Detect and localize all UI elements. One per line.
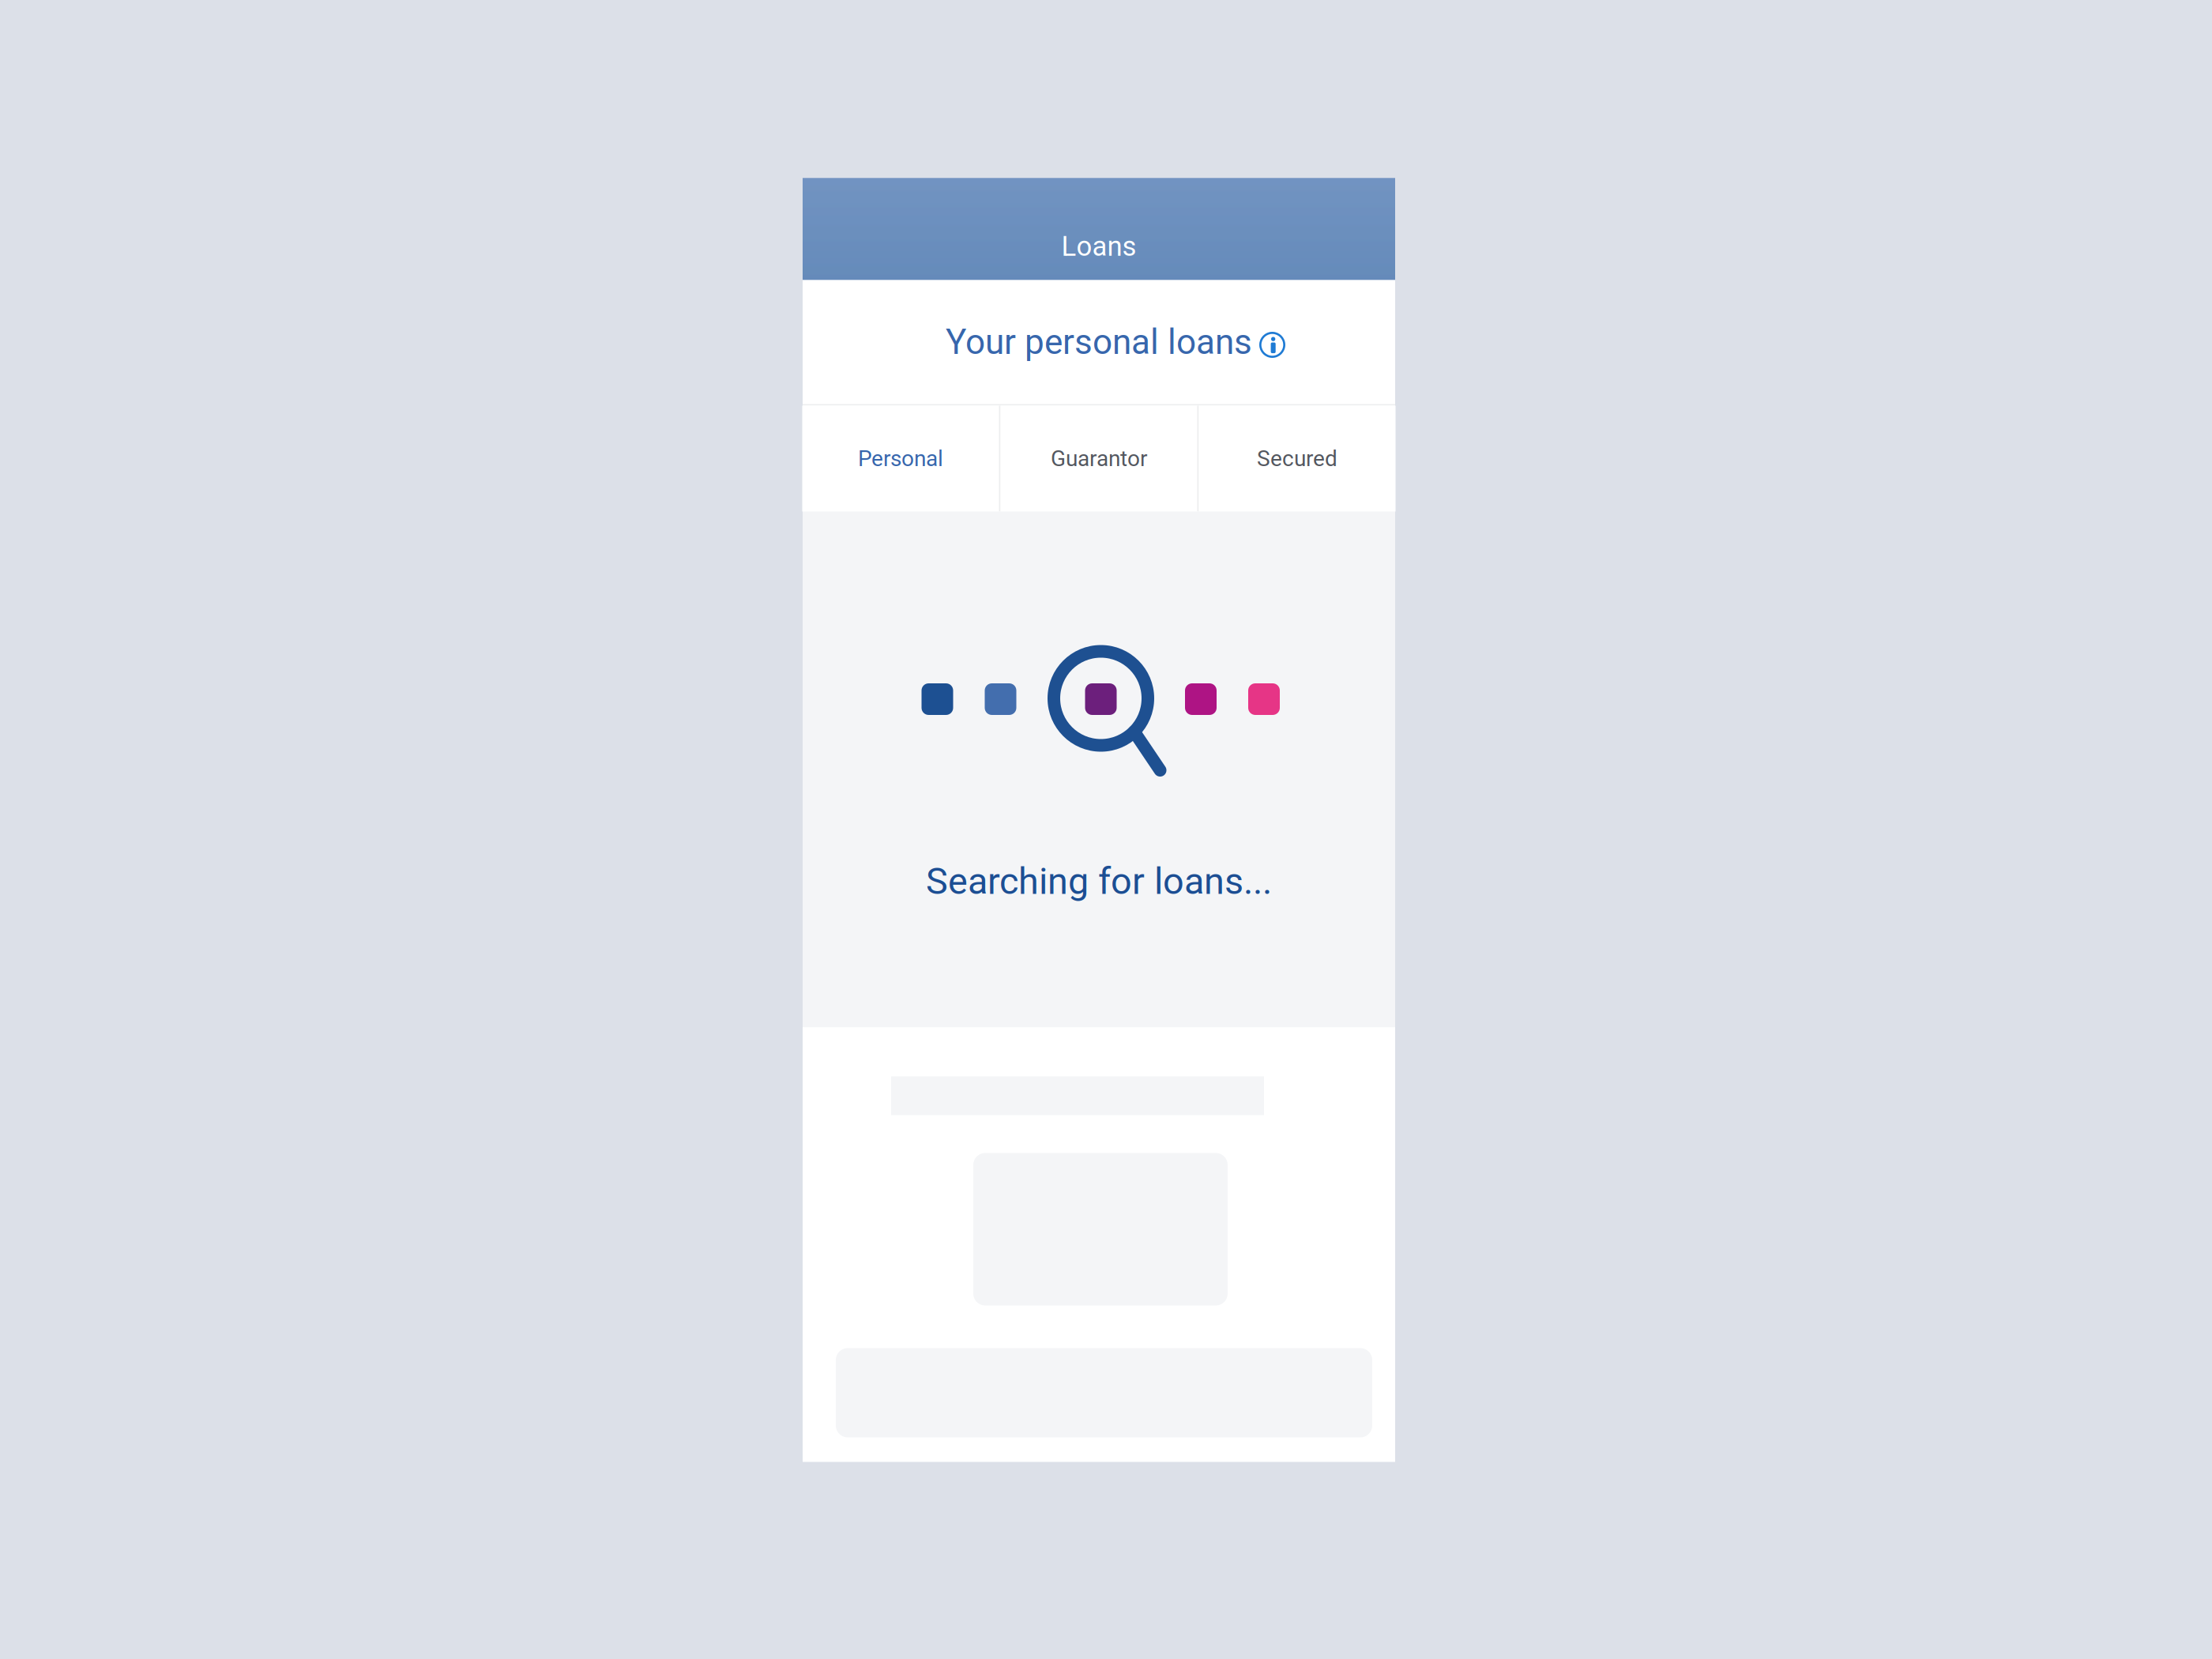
staticText: Loans [1061, 230, 1136, 263]
button[interactable]: Personal [802, 406, 999, 512]
staticText: Personal [858, 446, 943, 472]
button[interactable]: About personal loans [1251, 324, 1293, 366]
staticText: Secured [1257, 446, 1337, 472]
staticText: Guarantor [1051, 446, 1147, 472]
staticText: Searching for loans... [926, 860, 1272, 903]
button[interactable]: Guarantor [1001, 406, 1197, 512]
staticText: Your personal loans [946, 322, 1252, 362]
button[interactable]: Secured [1199, 406, 1396, 512]
